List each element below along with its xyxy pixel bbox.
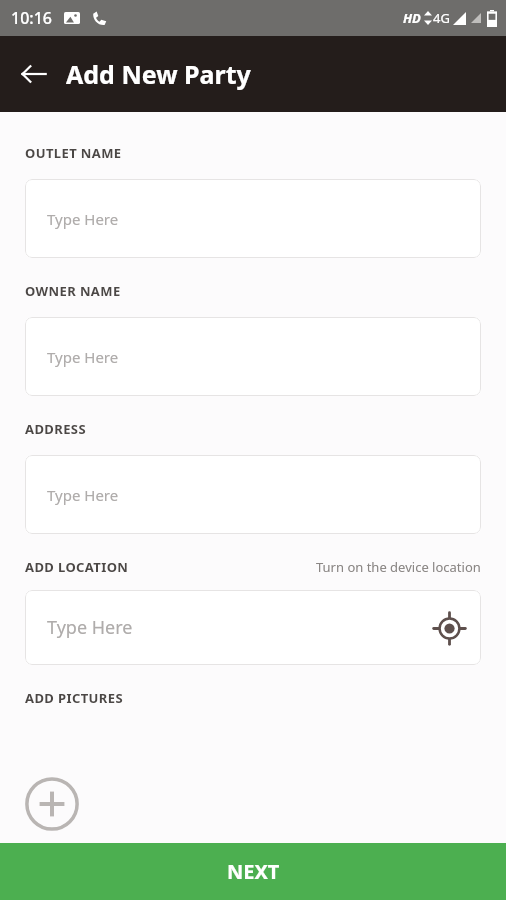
button[interactable]: Type Here (25, 317, 481, 396)
button[interactable]: Type Here (25, 179, 481, 258)
staticText: OUTLET NAME (25, 144, 122, 162)
staticText: Add New Party (66, 57, 251, 91)
staticText: 10:16 (11, 7, 52, 29)
staticText: Type Here (47, 615, 133, 640)
staticText: HD (403, 9, 421, 27)
staticText: ADD PICTURES (25, 689, 123, 707)
staticText: Type Here (47, 347, 119, 367)
staticText: ADD LOCATION (25, 558, 129, 576)
staticText: ADDRESS (25, 420, 86, 438)
button[interactable]: Type Here (25, 590, 481, 665)
button[interactable]: Add picture (25, 777, 79, 831)
staticText: 4G (433, 9, 450, 27)
staticText: OWNER NAME (25, 282, 121, 300)
staticText: Type Here (47, 209, 119, 229)
button[interactable]: Type Here (25, 455, 481, 534)
button[interactable]: NEXT (0, 843, 506, 900)
staticText: NEXT (227, 858, 280, 885)
staticText: Type Here (47, 485, 119, 505)
button[interactable]: Use current location (430, 609, 468, 647)
button[interactable]: Back (12, 52, 56, 96)
staticText: Turn on the device location (316, 558, 481, 576)
